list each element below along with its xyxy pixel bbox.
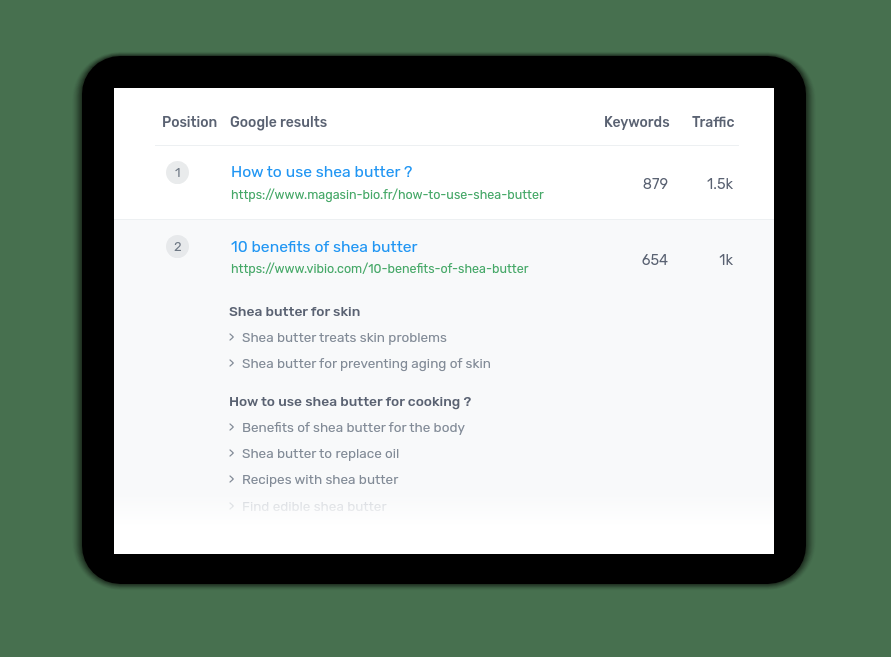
staticText: 10 benefits of shea butter <box>231 237 418 256</box>
staticText: Recipes with shea butter <box>242 471 399 487</box>
button[interactable]: Benefits of shea butter for the body <box>229 417 465 437</box>
button[interactable]: Find edible shea butter <box>229 496 387 516</box>
staticText: 654 <box>528 251 668 268</box>
button[interactable]: 2 <box>114 220 774 293</box>
button[interactable]: Shea butter to replace oil <box>229 443 400 463</box>
staticText: Shea butter for skin <box>229 303 361 319</box>
staticText: 879 <box>528 175 668 192</box>
staticText: Position <box>162 114 218 131</box>
button[interactable]: Shea butter for preventing aging of skin <box>229 353 491 373</box>
staticText: Shea butter treats skin problems <box>242 329 447 345</box>
button[interactable]: 1 <box>114 146 774 219</box>
staticText: https://www.vibio.com/10-benefits-of-she… <box>231 261 529 276</box>
staticText: Benefits of shea butter for the body <box>242 419 465 435</box>
staticText: 2 <box>174 239 182 254</box>
staticText: 1 <box>175 165 181 180</box>
staticText: Shea butter for preventing aging of skin <box>242 355 491 371</box>
staticText: 1.5k <box>593 175 733 192</box>
staticText: Keywords <box>604 114 670 131</box>
staticText: Google results <box>230 114 328 131</box>
staticText: Shea butter to replace oil <box>242 445 400 461</box>
button[interactable]: Recipes with shea butter <box>229 469 399 489</box>
staticText: How to use shea butter for cooking ? <box>229 393 472 409</box>
staticText: How to use shea butter ? <box>231 162 413 181</box>
staticText: 1k <box>593 251 733 268</box>
staticText: Traffic <box>692 114 735 131</box>
staticText: https://www.magasin-bio.fr/how-to-use-sh… <box>231 187 544 202</box>
staticText: Find edible shea butter <box>242 498 387 514</box>
button[interactable]: Shea butter treats skin problems <box>229 327 447 347</box>
